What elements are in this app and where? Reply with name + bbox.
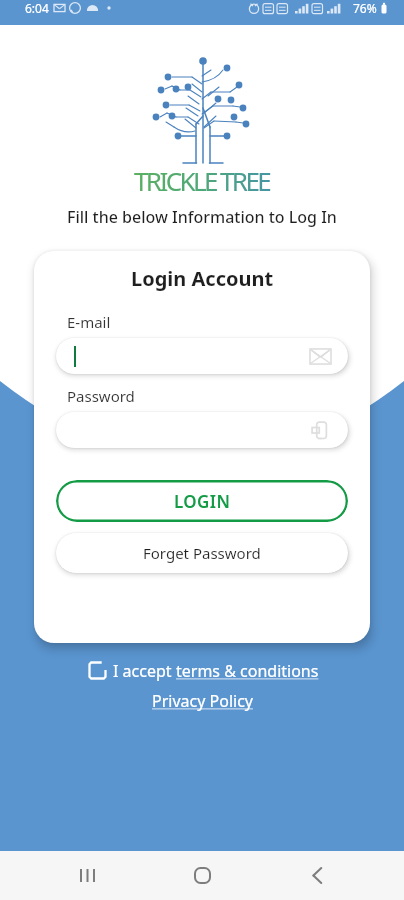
button[interactable]: Back — [289, 851, 345, 900]
staticText: 76% — [353, 0, 377, 16]
button[interactable]: Forget Password — [56, 533, 348, 573]
staticText: 6:04 — [25, 0, 49, 16]
button[interactable]: terms & conditions — [176, 660, 319, 682]
staticText: I accept — [113, 660, 176, 682]
button[interactable] — [56, 338, 348, 374]
staticText: Forget Password — [143, 543, 261, 563]
staticText: Fill the below Information to Log In — [67, 206, 337, 228]
staticText: TRICKLE TREE — [134, 163, 270, 198]
staticText: Password — [67, 386, 135, 406]
button[interactable]: Home — [174, 851, 230, 900]
button[interactable]: LOGIN — [56, 480, 348, 522]
button[interactable] — [56, 412, 348, 448]
staticText: LOGIN — [174, 490, 231, 513]
staticText: Login Account — [131, 265, 274, 292]
button[interactable]: Privacy Policy — [152, 690, 253, 712]
button[interactable]: Accept terms and conditions — [86, 659, 109, 682]
button[interactable]: Recent apps — [59, 851, 115, 900]
staticText: E-mail — [67, 312, 111, 332]
